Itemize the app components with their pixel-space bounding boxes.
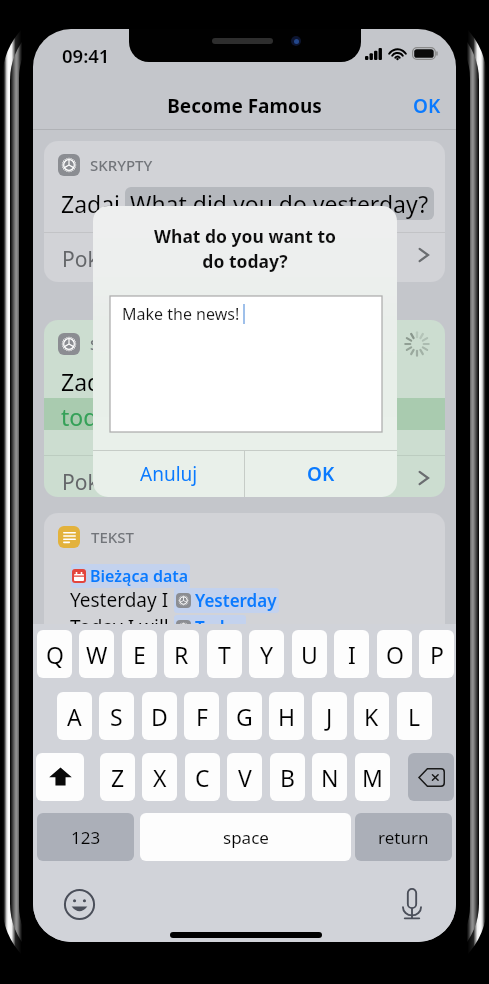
staticText: 123 (71, 826, 101, 849)
button[interactable]: Q (37, 630, 72, 678)
staticText: A (67, 701, 82, 732)
staticText: R (174, 639, 189, 670)
button[interactable]: OK (245, 451, 397, 497)
button[interactable]: Backspace (408, 753, 454, 801)
button[interactable]: I (334, 630, 369, 678)
staticText: Pokaż (62, 245, 121, 274)
button[interactable]: S (99, 692, 134, 740)
button[interactable]: P (419, 630, 454, 678)
button[interactable]: V (227, 753, 262, 801)
staticText: M (362, 762, 383, 793)
staticText: Z (111, 762, 125, 793)
staticText: today (61, 401, 122, 432)
staticText: K (364, 701, 379, 732)
staticText: Today (195, 616, 244, 639)
staticText: 09:41 (62, 43, 110, 68)
staticText: OK (413, 93, 441, 119)
button[interactable]: L (397, 692, 432, 740)
staticText: TEKST (91, 527, 134, 547)
button[interactable]: O (377, 630, 412, 678)
button[interactable]: M (355, 753, 390, 801)
staticText: Anuluj (140, 461, 198, 487)
button[interactable]: K (354, 692, 389, 740)
button[interactable]: C (185, 753, 220, 801)
button[interactable]: R (164, 630, 199, 678)
button[interactable]: Shift (36, 753, 84, 801)
staticText: T (218, 639, 231, 670)
staticText: Bieżąca data (90, 565, 189, 587)
staticText: W (86, 639, 108, 670)
button[interactable]: W (79, 630, 114, 678)
staticText: N (321, 762, 339, 793)
staticText: S (110, 701, 123, 732)
staticText: Become Famous (33, 93, 456, 119)
staticText: L (408, 701, 421, 732)
staticText: Yesterday (195, 589, 277, 612)
button[interactable]: D (142, 692, 177, 740)
button[interactable]: return (355, 813, 452, 861)
staticText: B (280, 762, 295, 793)
staticText: J (326, 701, 333, 732)
staticText: Today I will (70, 614, 174, 640)
button[interactable]: Anuluj (93, 451, 244, 497)
staticText: V (238, 762, 252, 793)
staticText: D (151, 701, 168, 732)
button[interactable]: OK (399, 83, 455, 129)
staticText: SKRYPTY (90, 334, 153, 354)
button[interactable]: Z (100, 753, 135, 801)
staticText: Zadaj (61, 366, 121, 397)
staticText: F (196, 701, 208, 732)
button[interactable]: E (122, 630, 157, 678)
staticText: E (133, 639, 146, 670)
staticText: Y (260, 639, 274, 670)
button[interactable]: X (142, 753, 177, 801)
button[interactable]: Dictation (388, 880, 436, 928)
button[interactable]: G (227, 692, 262, 740)
staticText: Pokaż (62, 468, 121, 497)
staticText: What did you do yesterday? (130, 188, 429, 219)
staticText: O (386, 639, 404, 670)
staticText: OK (307, 461, 335, 487)
staticText: Q (46, 639, 64, 670)
button[interactable]: Emoji keyboard (55, 880, 103, 928)
staticText: Yesterday I (70, 587, 174, 613)
staticText: H (278, 701, 296, 732)
staticText: X (153, 762, 167, 793)
button[interactable]: J (312, 692, 347, 740)
button[interactable]: T (207, 630, 242, 678)
staticText: space (223, 826, 269, 849)
button[interactable]: N (312, 753, 347, 801)
staticText: SKRYPTY (90, 155, 153, 175)
button[interactable]: A (57, 692, 92, 740)
staticText: Zadaj (61, 188, 121, 219)
button[interactable]: 123 (37, 813, 134, 861)
button[interactable]: space (140, 813, 351, 861)
button[interactable]: SKRYPTY (44, 141, 445, 282)
button[interactable]: SKRYPTY (44, 320, 445, 497)
button[interactable]: TEKST (44, 513, 445, 663)
staticText: return (378, 826, 429, 849)
staticText: C (195, 762, 210, 793)
button[interactable]: F (184, 692, 219, 740)
button[interactable]: H (269, 692, 304, 740)
staticText: U (301, 639, 318, 670)
staticText: P (430, 639, 444, 670)
staticText: Make the news! (122, 303, 240, 325)
staticText: What do you want to do today? (93, 224, 397, 273)
button[interactable]: B (270, 753, 305, 801)
staticText: G (236, 701, 253, 732)
button[interactable]: U (292, 630, 327, 678)
staticText: I (348, 639, 356, 670)
button[interactable]: Y (249, 630, 284, 678)
